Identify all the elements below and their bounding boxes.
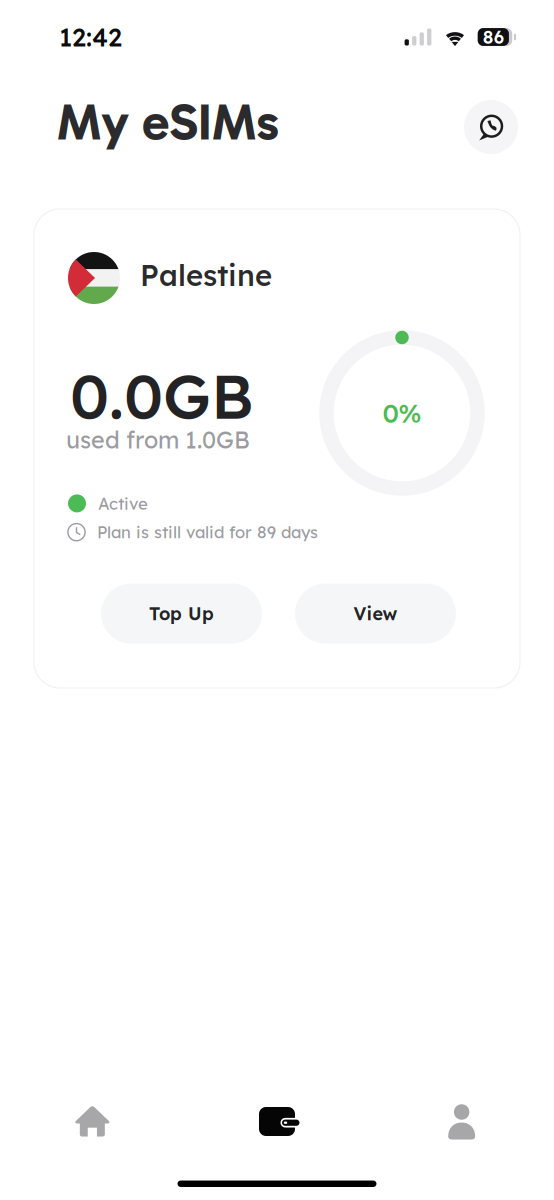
staticText: View bbox=[353, 602, 397, 625]
button[interactable]: Contact us on WhatsApp bbox=[464, 100, 518, 154]
button[interactable]: Home bbox=[0, 1062, 185, 1180]
staticText: Plan is still valid for 89 days bbox=[97, 522, 318, 542]
staticText: Active bbox=[98, 493, 148, 514]
button[interactable]: Top Up bbox=[101, 583, 262, 643]
staticText: Top Up bbox=[149, 602, 214, 625]
staticText: 12:42 bbox=[59, 21, 122, 53]
button[interactable]: View bbox=[295, 583, 456, 643]
staticText: Palestine bbox=[140, 257, 272, 293]
staticText: 86 bbox=[483, 26, 504, 48]
staticText: 0.0GB bbox=[70, 357, 254, 434]
staticText: 0% bbox=[382, 397, 421, 429]
button[interactable]: My eSIMs bbox=[185, 1062, 369, 1180]
button[interactable]: Profile bbox=[369, 1062, 554, 1180]
staticText: used from 1.0GB bbox=[66, 425, 250, 454]
staticText: My eSIMs bbox=[57, 91, 279, 153]
